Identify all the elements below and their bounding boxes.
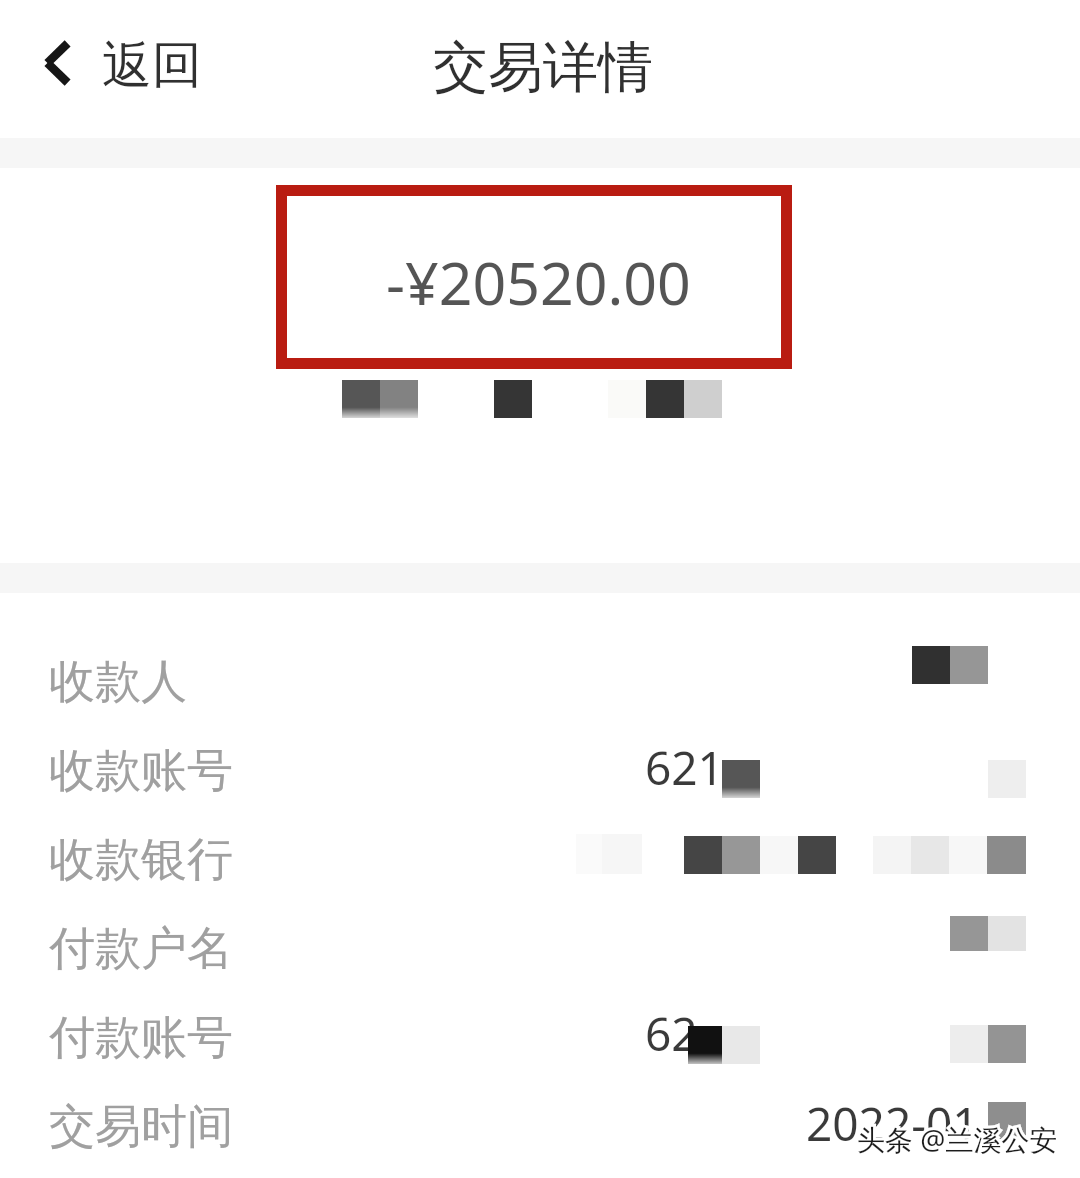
button[interactable]: 收款人: [0, 637, 1080, 726]
staticText: 返回: [102, 34, 202, 97]
other: Back: [44, 40, 71, 86]
button[interactable]: 收款银行: [0, 815, 1080, 904]
button[interactable]: 付款户名: [0, 904, 1080, 993]
staticText: 62: [645, 1002, 698, 1065]
staticText: 收款账号: [49, 742, 233, 800]
staticText: 付款账号: [49, 1009, 233, 1067]
staticText: 621: [645, 736, 724, 799]
button[interactable]: 付款账号: [0, 993, 1080, 1082]
button[interactable]: 交易时间: [0, 1082, 1080, 1171]
staticText: 头条 @兰溪公安: [857, 1120, 1058, 1158]
staticText: 交易时间: [49, 1098, 233, 1156]
staticText: 2022-01: [806, 1092, 979, 1155]
button[interactable]: Back: [22, 8, 224, 118]
staticText: 收款银行: [49, 831, 233, 889]
button[interactable]: 收款账号: [0, 726, 1080, 815]
staticText: -¥20520.00: [386, 242, 691, 322]
staticText: 交易详情: [433, 33, 653, 102]
staticText: 付款户名: [49, 920, 233, 978]
staticText: 收款人: [49, 653, 187, 711]
staticText: 头条 @兰溪公安: [857, 1120, 1058, 1158]
